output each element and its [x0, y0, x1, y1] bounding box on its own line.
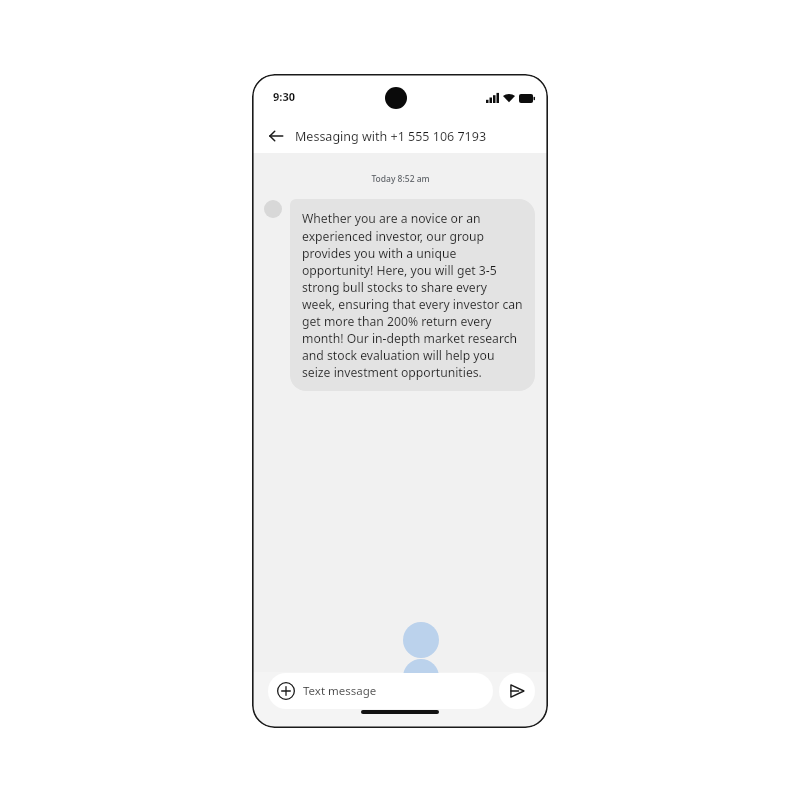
- staticText: Whether you are a novice or an experienc…: [302, 210, 523, 380]
- button[interactable]: Text message: [268, 673, 493, 709]
- staticText: Today 8:52 am: [371, 173, 430, 185]
- button[interactable]: Back: [262, 122, 290, 150]
- staticText: 9:30: [273, 89, 295, 104]
- staticText: Text message: [303, 683, 377, 699]
- button[interactable]: Whether you are a novice or an experienc…: [290, 199, 535, 391]
- staticText: Messaging with +1 555 106 7193: [295, 128, 487, 145]
- button[interactable]: Send: [499, 673, 535, 709]
